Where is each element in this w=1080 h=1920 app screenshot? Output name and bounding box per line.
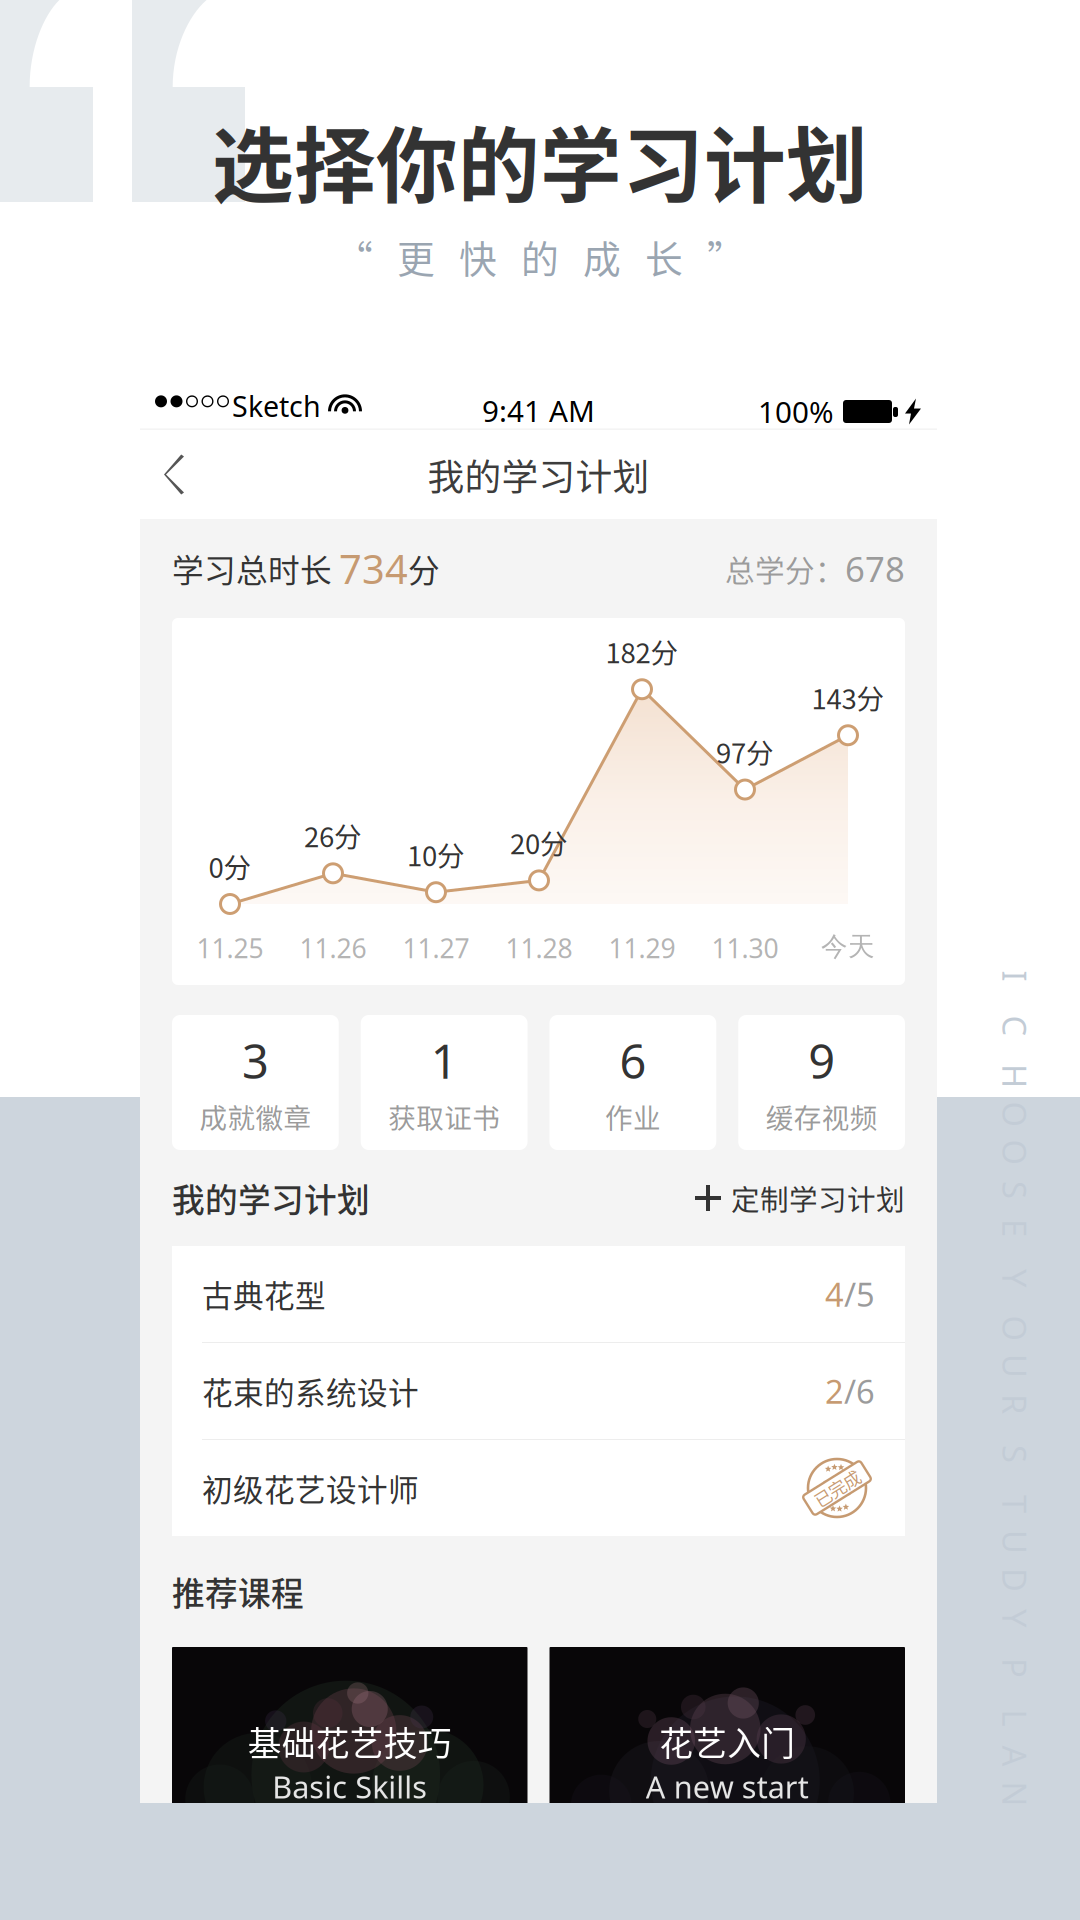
staticText: 我的学习计划 <box>427 448 649 501</box>
button[interactable]: 基础花艺技巧 <box>172 1647 527 1847</box>
staticText: 26分 <box>304 815 362 855</box>
staticText: “ 更 快 的 成 长 ” <box>335 229 745 284</box>
staticText: O <box>1002 1306 1027 1350</box>
staticText: 推荐课程 <box>172 1568 304 1615</box>
staticText: 缓存视频 <box>766 1096 878 1136</box>
staticText: 9:41 AM <box>482 390 595 431</box>
staticText: 2 <box>825 1369 844 1413</box>
staticText: 678 <box>845 545 905 592</box>
staticText: 4 <box>825 1272 844 1316</box>
button[interactable]: 3 <box>172 1015 339 1150</box>
staticText: 9 <box>808 1029 835 1092</box>
staticText: 97分 <box>716 731 774 771</box>
staticText: U <box>1003 1344 1027 1388</box>
staticText: 初级花艺设计师 <box>202 1466 419 1510</box>
button[interactable]: 花束的系统设计 <box>172 1343 905 1439</box>
staticText: H <box>1003 1054 1027 1098</box>
button[interactable]: 初级花艺设计师 <box>172 1440 905 1536</box>
staticText: Sketch <box>232 386 321 425</box>
staticText: 11.30 <box>711 930 778 966</box>
staticText: 11.26 <box>299 930 366 966</box>
staticText: 花艺入门 <box>659 1717 795 1766</box>
staticText: 学习总时长 <box>172 546 339 591</box>
staticText: R <box>1005 1382 1025 1426</box>
staticText: 182分 <box>605 631 678 671</box>
staticText: 3 <box>242 1029 269 1092</box>
staticText: 获取证书 <box>388 1096 500 1136</box>
staticText: 11.29 <box>608 930 675 966</box>
staticText: 总学分： <box>725 547 845 590</box>
staticText: 我的学习计划 <box>172 1174 370 1222</box>
staticText: I <box>1009 954 1020 998</box>
button[interactable]: 1 <box>361 1015 528 1150</box>
staticText: 20分 <box>510 822 568 862</box>
button[interactable]: 花艺入门 <box>549 1647 905 1847</box>
staticText: 分 <box>408 546 440 591</box>
staticText: 作业 <box>605 1096 661 1136</box>
staticText: 0分 <box>208 846 251 886</box>
staticText: 143分 <box>811 677 884 717</box>
staticText: A new start <box>646 1766 809 1807</box>
staticText: Basic Skills <box>272 1766 427 1807</box>
staticText: D <box>1003 1558 1027 1602</box>
staticText: O <box>1002 1092 1027 1136</box>
staticText: A <box>1004 1734 1025 1778</box>
staticText: P <box>1005 1646 1025 1690</box>
staticText: 100% <box>758 391 834 432</box>
button[interactable]: 9 <box>738 1015 905 1150</box>
button[interactable]: 古典花型 <box>172 1246 905 1342</box>
staticText: 今天 <box>821 930 875 963</box>
staticText: 11.27 <box>402 930 469 966</box>
staticText: 11.28 <box>505 930 572 966</box>
staticText: /5 <box>844 1272 875 1316</box>
staticText: N <box>1002 1772 1027 1816</box>
staticText: 6 <box>619 1029 646 1092</box>
staticText: 基础花艺技巧 <box>248 1717 452 1766</box>
staticText: 734 <box>339 541 408 596</box>
staticText: 11.25 <box>196 930 263 966</box>
staticText: 已完成 <box>811 1475 862 1500</box>
staticText: /6 <box>844 1369 875 1413</box>
staticText: U <box>1003 1520 1027 1564</box>
button[interactable]: Back <box>140 430 210 518</box>
staticText: 10分 <box>407 834 465 874</box>
staticText: 1 <box>431 1029 458 1092</box>
button[interactable]: 6 <box>549 1015 716 1150</box>
staticText: O <box>1002 1130 1027 1174</box>
staticText: 古典花型 <box>202 1272 326 1316</box>
button[interactable]: 定制学习计划 <box>695 1177 905 1219</box>
staticText: 成就徽章 <box>199 1096 311 1136</box>
staticText: 选择你的学习计划 <box>212 101 868 219</box>
staticText: 花束的系统设计 <box>202 1369 419 1413</box>
staticText: C <box>1004 1004 1025 1048</box>
staticText: 定制学习计划 <box>731 1177 905 1219</box>
